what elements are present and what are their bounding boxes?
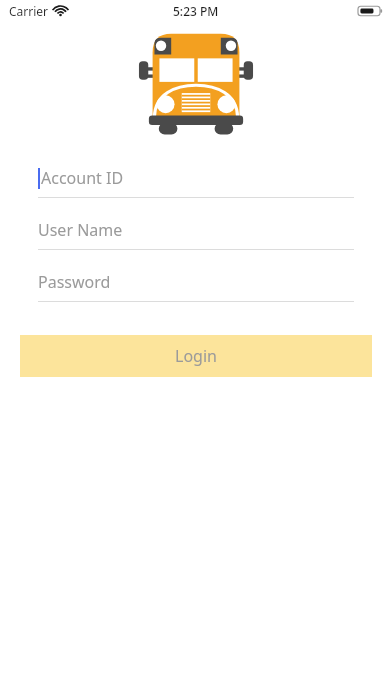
staticText: Account ID [41, 167, 124, 189]
staticText: 5:23 PM [173, 3, 219, 19]
staticText: User Name [38, 219, 123, 241]
button[interactable]: User Name [0, 218, 392, 250]
button[interactable]: Login [20, 335, 372, 377]
staticText: Login [175, 345, 217, 367]
button[interactable]: Password [0, 270, 392, 302]
staticText: Password [38, 271, 111, 293]
button[interactable]: Account ID [0, 166, 392, 198]
staticText: Carrier [9, 3, 49, 19]
